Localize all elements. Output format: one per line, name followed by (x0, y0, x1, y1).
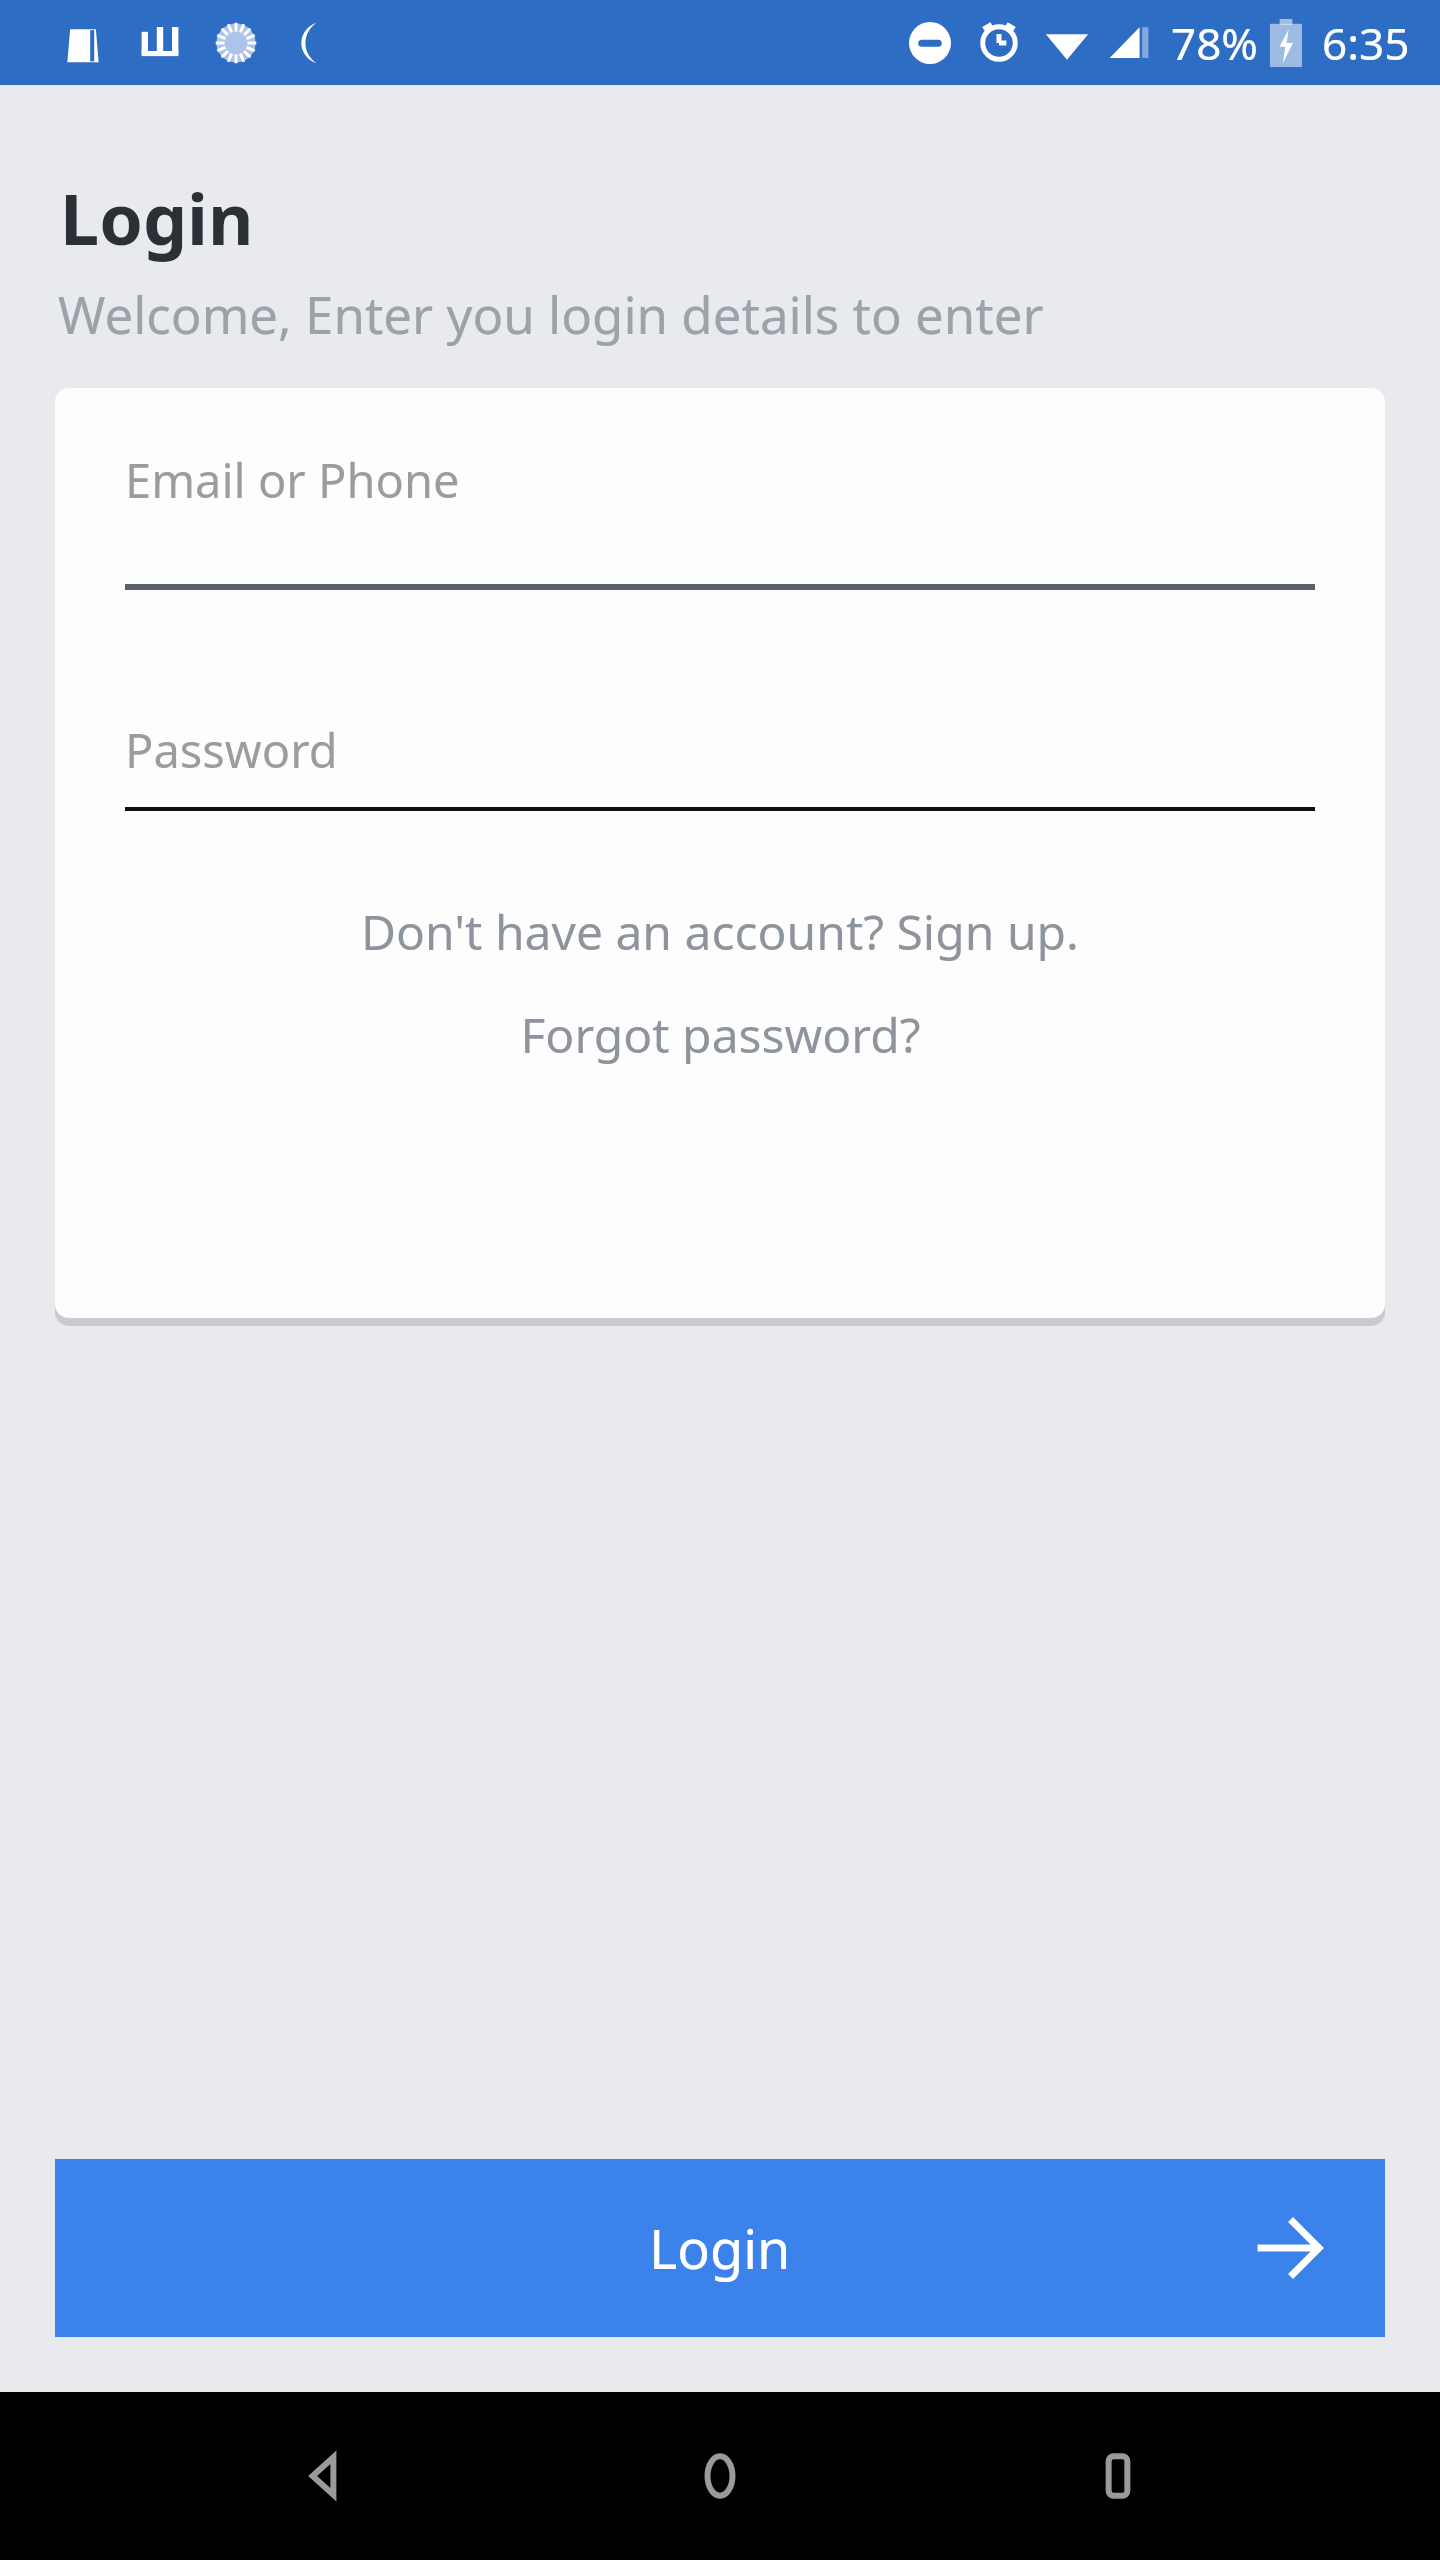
button[interactable]: Back (248, 2401, 398, 2551)
button[interactable]: Login (55, 2159, 1385, 2337)
staticText: Welcome, Enter you login details to ente… (58, 279, 1044, 348)
staticText: 78% (1171, 13, 1258, 73)
staticText: Login (60, 170, 254, 265)
staticText: Don't have an account? Sign up. (361, 899, 1079, 964)
staticText: Forgot password? (520, 1002, 921, 1067)
staticText: Login (649, 2211, 791, 2285)
button[interactable]: Recent apps (1043, 2401, 1193, 2551)
staticText: Password (125, 718, 338, 782)
staticText: Email or Phone (125, 448, 460, 512)
staticText: 6:35 (1322, 13, 1410, 73)
button[interactable]: Forgot password? (55, 1002, 1385, 1067)
button[interactable]: Home (645, 2401, 795, 2551)
button[interactable]: Don't have an account? Sign up. (55, 899, 1385, 964)
